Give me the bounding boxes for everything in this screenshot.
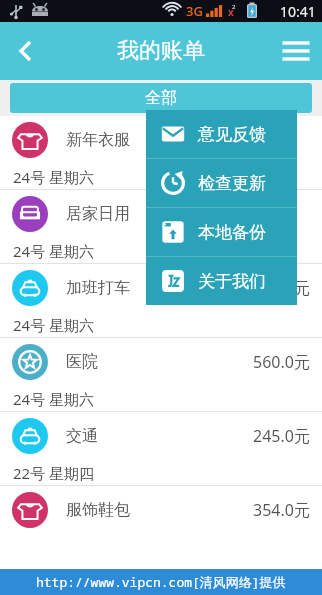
staticText: 居家日用 (66, 204, 130, 224)
staticText: 560.0元 (253, 351, 310, 373)
button[interactable]: 加班打车 (0, 264, 322, 337)
staticText: 我的账单 (117, 37, 205, 65)
staticText: 全部 (145, 88, 177, 108)
staticText: 24号 星期六 (13, 167, 95, 187)
staticText: 本地备份 (198, 222, 266, 243)
staticText: 关于我们 (198, 271, 266, 292)
staticText: 2 (232, 3, 236, 11)
button[interactable]: 医院 (0, 338, 322, 411)
button[interactable]: 交通 (0, 412, 322, 485)
button[interactable]: 服饰鞋包 (0, 486, 322, 548)
staticText: 医院 (66, 352, 98, 372)
staticText: x (228, 5, 234, 19)
staticText: 3G (186, 2, 203, 20)
button[interactable]: 全部 (10, 83, 312, 113)
button[interactable]: 意见反馈 (146, 110, 297, 158)
staticText: 服饰鞋包 (66, 500, 130, 520)
button[interactable]: 检查更新 (146, 159, 297, 207)
button[interactable]: 关于我们 (146, 257, 297, 305)
staticText: 交通 (66, 426, 98, 446)
staticText: 检查更新 (198, 173, 266, 194)
staticText: 24号 星期六 (13, 315, 95, 335)
staticText: 245.0元 (253, 425, 310, 447)
staticText: 10:41 (280, 2, 316, 21)
staticText: 24号 星期六 (13, 241, 95, 261)
staticText: 22号 星期四 (13, 463, 95, 483)
button[interactable]: 本地备份 (146, 208, 297, 256)
staticText: 加班打车 (66, 278, 130, 298)
button[interactable]: 新年衣服 (0, 116, 322, 189)
staticText: 新年衣服 (66, 130, 130, 150)
staticText: 140.0元 (253, 277, 310, 299)
staticText: http://www.vipcn.com[清风网络]提供 (36, 573, 286, 591)
button[interactable]: Back (0, 27, 48, 75)
button[interactable]: 居家日用 (0, 190, 322, 263)
staticText: 意见反馈 (198, 124, 266, 145)
staticText: 24号 星期六 (13, 389, 95, 409)
staticText: 354.0元 (253, 499, 310, 521)
button[interactable]: Menu (270, 25, 322, 77)
